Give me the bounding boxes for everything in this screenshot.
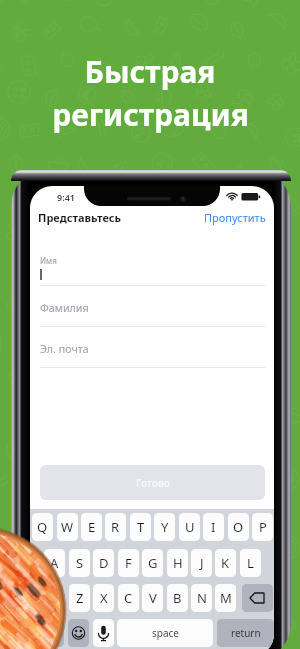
staticText: E bbox=[88, 518, 96, 536]
staticText: регистрация bbox=[52, 94, 249, 135]
staticText: O bbox=[233, 518, 244, 536]
button[interactable]: A bbox=[44, 549, 65, 577]
button[interactable]: Return bbox=[217, 619, 274, 647]
button[interactable]: U bbox=[179, 513, 200, 541]
button[interactable]: C bbox=[118, 584, 139, 612]
button[interactable]: S bbox=[69, 549, 90, 577]
button[interactable]: M bbox=[215, 584, 236, 612]
staticText: U bbox=[185, 518, 195, 536]
staticText: space bbox=[152, 626, 179, 640]
button[interactable]: Space bbox=[117, 619, 213, 647]
staticText: Пропустить bbox=[204, 210, 266, 225]
staticText: G bbox=[148, 554, 158, 572]
staticText: 123 bbox=[39, 626, 57, 640]
staticText: A bbox=[50, 554, 59, 572]
button[interactable]: R bbox=[105, 513, 126, 541]
staticText: L bbox=[247, 554, 254, 572]
staticText: Быстрая bbox=[84, 51, 216, 92]
button[interactable]: E bbox=[81, 513, 102, 541]
staticText: P bbox=[259, 518, 267, 536]
staticText: W bbox=[61, 518, 74, 536]
button[interactable]: D bbox=[93, 549, 114, 577]
staticText: C bbox=[124, 589, 133, 607]
staticText: Представьтесь bbox=[38, 210, 122, 225]
staticText: T bbox=[137, 518, 145, 536]
button[interactable]: T bbox=[130, 513, 151, 541]
staticText: B bbox=[173, 589, 182, 607]
button[interactable]: Имя bbox=[30, 252, 274, 293]
button[interactable]: O bbox=[228, 513, 249, 541]
button[interactable]: Фамилия bbox=[30, 293, 274, 334]
staticText: I bbox=[211, 518, 216, 536]
button[interactable]: N bbox=[191, 584, 212, 612]
button[interactable]: Z bbox=[69, 584, 90, 612]
button[interactable]: Пропустить bbox=[204, 210, 266, 225]
staticText: R bbox=[111, 518, 120, 536]
button[interactable]: W bbox=[57, 513, 78, 541]
button[interactable]: Backspace bbox=[242, 584, 273, 612]
button[interactable]: Эл. почта bbox=[30, 334, 274, 375]
staticText: F bbox=[125, 554, 132, 572]
staticText: N bbox=[197, 589, 207, 607]
staticText: K bbox=[221, 554, 230, 572]
button[interactable]: H bbox=[167, 549, 188, 577]
staticText: D bbox=[99, 554, 109, 572]
button[interactable]: L bbox=[240, 549, 261, 577]
staticText: return bbox=[231, 626, 261, 640]
button[interactable]: Numbers bbox=[32, 619, 64, 647]
staticText: Готово bbox=[136, 476, 170, 490]
button[interactable]: F bbox=[118, 549, 139, 577]
staticText: Q bbox=[37, 518, 48, 536]
button[interactable]: J bbox=[191, 549, 212, 577]
button[interactable]: Emoji bbox=[68, 619, 89, 647]
button[interactable]: G bbox=[142, 549, 163, 577]
staticText: M bbox=[220, 589, 232, 607]
button[interactable]: Y bbox=[154, 513, 175, 541]
staticText: Имя bbox=[40, 255, 57, 266]
button[interactable]: Dictation bbox=[93, 619, 114, 647]
button[interactable]: B bbox=[167, 584, 188, 612]
button[interactable]: Shift bbox=[32, 584, 63, 612]
staticText: Эл. почта bbox=[40, 342, 89, 357]
button[interactable]: K bbox=[215, 549, 236, 577]
button[interactable]: V bbox=[142, 584, 163, 612]
staticText: J bbox=[200, 554, 204, 572]
staticText: 9:41 bbox=[57, 191, 75, 203]
button[interactable]: P bbox=[252, 513, 273, 541]
staticText: Фамилия bbox=[40, 301, 89, 316]
staticText: Z bbox=[76, 589, 84, 607]
staticText: X bbox=[100, 589, 108, 607]
staticText: Y bbox=[161, 518, 169, 536]
button[interactable]: I bbox=[203, 513, 224, 541]
button[interactable]: Q bbox=[32, 513, 53, 541]
button[interactable]: X bbox=[93, 584, 114, 612]
staticText: V bbox=[149, 589, 157, 607]
staticText: H bbox=[173, 554, 183, 572]
staticText: S bbox=[76, 554, 84, 572]
